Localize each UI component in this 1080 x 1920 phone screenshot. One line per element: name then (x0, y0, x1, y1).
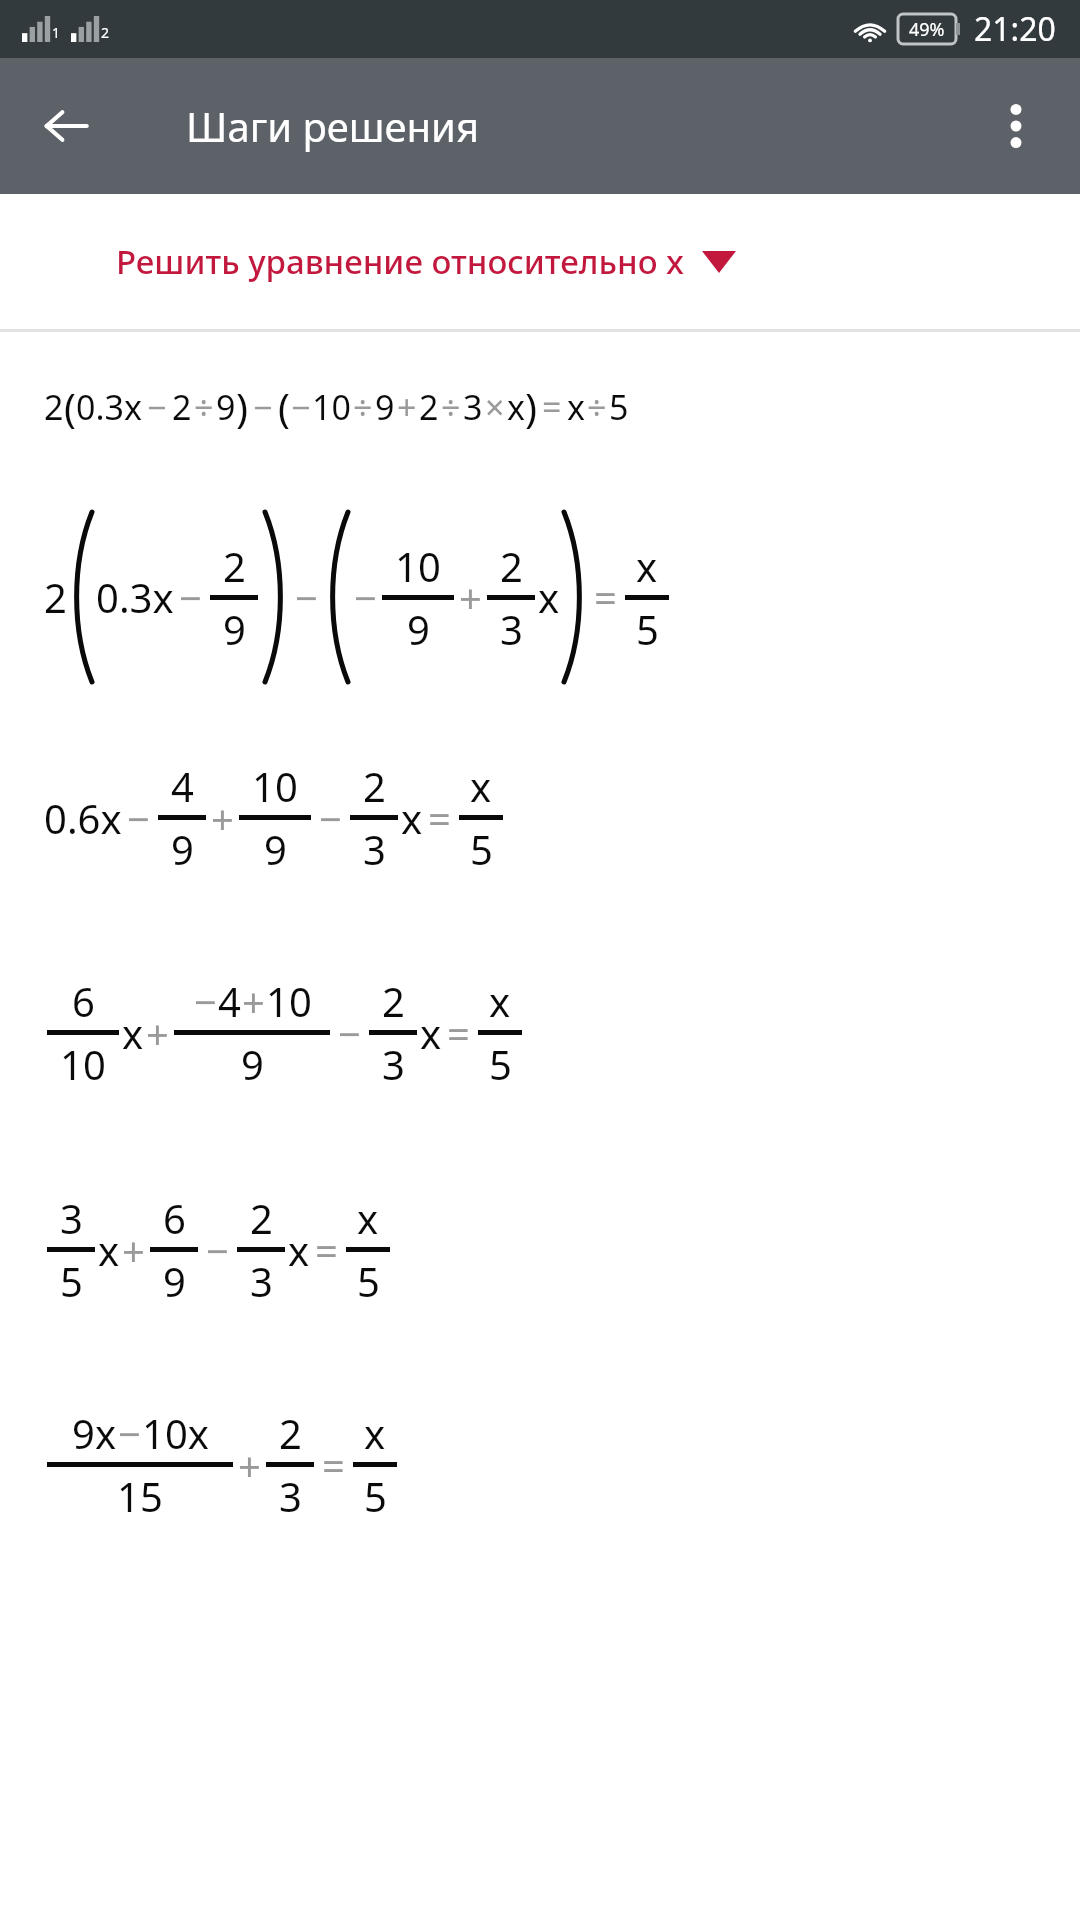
staticText: ÷ (353, 384, 373, 430)
staticText: − (338, 1006, 361, 1060)
staticText: ÷ (194, 384, 214, 430)
staticText: = (428, 791, 451, 845)
button[interactable]: More options (974, 84, 1058, 168)
staticText: x (636, 539, 658, 593)
staticText: 2 (382, 974, 405, 1028)
staticText: 9 (264, 822, 287, 876)
staticText: + (146, 1006, 169, 1060)
staticText: + (238, 1438, 261, 1492)
staticText: − (354, 570, 377, 624)
staticText: 15 (117, 1469, 163, 1523)
staticText: 9 (223, 602, 246, 656)
staticText: 2 (44, 570, 67, 624)
staticText: 2 (250, 1191, 273, 1245)
button[interactable]: Решить уравнение относительно x (0, 194, 1080, 329)
staticText: 9 (171, 822, 194, 876)
staticText: 6 (163, 1191, 186, 1245)
staticText: 2 (419, 384, 439, 430)
staticText: ( (64, 380, 76, 434)
staticText: 9x (72, 1406, 117, 1460)
staticText: = (447, 1006, 470, 1060)
staticText: x (538, 570, 560, 624)
staticText: 0.6x (44, 791, 122, 845)
staticText: 2 (363, 759, 386, 813)
staticText: ( (278, 380, 290, 434)
staticText: ÷ (587, 384, 607, 430)
staticText: + (242, 974, 265, 1028)
staticText: 4 (171, 759, 194, 813)
staticText: x (401, 791, 423, 845)
staticText: − (127, 791, 150, 845)
staticText: 10 (395, 539, 441, 593)
staticText: − (147, 384, 167, 430)
staticText: 10 (312, 384, 351, 430)
staticText: 5 (60, 1254, 83, 1308)
staticText: 3 (500, 602, 523, 656)
staticText: ÷ (441, 384, 461, 430)
staticText: x (420, 1006, 442, 1060)
staticText: 9 (216, 384, 236, 430)
staticText: 5 (609, 384, 629, 430)
staticText: 9 (241, 1037, 264, 1091)
staticText: 4 (218, 974, 241, 1028)
staticText: 9 (375, 384, 395, 430)
staticText: 2 (223, 539, 246, 593)
staticText: ) (525, 380, 537, 434)
staticText: − (291, 384, 311, 430)
staticText: 5 (470, 822, 493, 876)
staticText: 5 (489, 1037, 512, 1091)
staticText: × (485, 384, 505, 430)
staticText: 3 (382, 1037, 405, 1091)
staticText: 10 (60, 1037, 106, 1091)
staticText: 10x (142, 1406, 209, 1460)
staticText: 3 (363, 822, 386, 876)
staticText: 9 (163, 1254, 186, 1308)
staticText: − (295, 570, 318, 624)
staticText: = (542, 384, 562, 430)
staticText: 1 (52, 23, 61, 42)
staticText: x (288, 1223, 310, 1277)
staticText: x (364, 1406, 386, 1460)
staticText: + (397, 384, 417, 430)
staticText: 0.3x (76, 384, 142, 430)
staticText: − (118, 1406, 141, 1460)
staticText: x (122, 1006, 144, 1060)
staticText: 3 (463, 384, 483, 430)
staticText: − (206, 1223, 229, 1277)
staticText: 6 (72, 974, 95, 1028)
staticText: Решить уравнение относительно x (116, 239, 684, 284)
staticText: 5 (636, 602, 659, 656)
staticText: x (507, 384, 525, 430)
staticText: = (322, 1438, 345, 1492)
staticText: 2 (101, 23, 110, 42)
staticText: 21:20 (974, 7, 1056, 51)
staticText: 0.3x (96, 570, 174, 624)
staticText: 10 (266, 974, 312, 1028)
staticText: + (211, 791, 234, 845)
staticText: x (489, 974, 511, 1028)
button[interactable]: Back (24, 84, 108, 168)
staticText: 5 (357, 1254, 380, 1308)
staticText: 49% (909, 17, 945, 42)
staticText: 9 (407, 602, 430, 656)
staticText: 3 (60, 1191, 83, 1245)
staticText: + (122, 1223, 145, 1277)
staticText: 3 (250, 1254, 273, 1308)
staticText: = (594, 570, 617, 624)
staticText: = (315, 1223, 338, 1277)
staticText: 5 (364, 1469, 387, 1523)
staticText: x (98, 1223, 120, 1277)
staticText: x (470, 759, 492, 813)
staticText: − (194, 974, 217, 1028)
staticText: − (253, 384, 273, 430)
staticText: Шаги решения (186, 99, 480, 153)
staticText: 3 (279, 1469, 302, 1523)
staticText: x (357, 1191, 379, 1245)
staticText: x (567, 384, 585, 430)
staticText: 2 (500, 539, 523, 593)
staticText: + (459, 570, 482, 624)
staticText: 10 (252, 759, 298, 813)
staticText: ) (236, 380, 248, 434)
staticText: 2 (279, 1406, 302, 1460)
staticText: − (319, 791, 342, 845)
